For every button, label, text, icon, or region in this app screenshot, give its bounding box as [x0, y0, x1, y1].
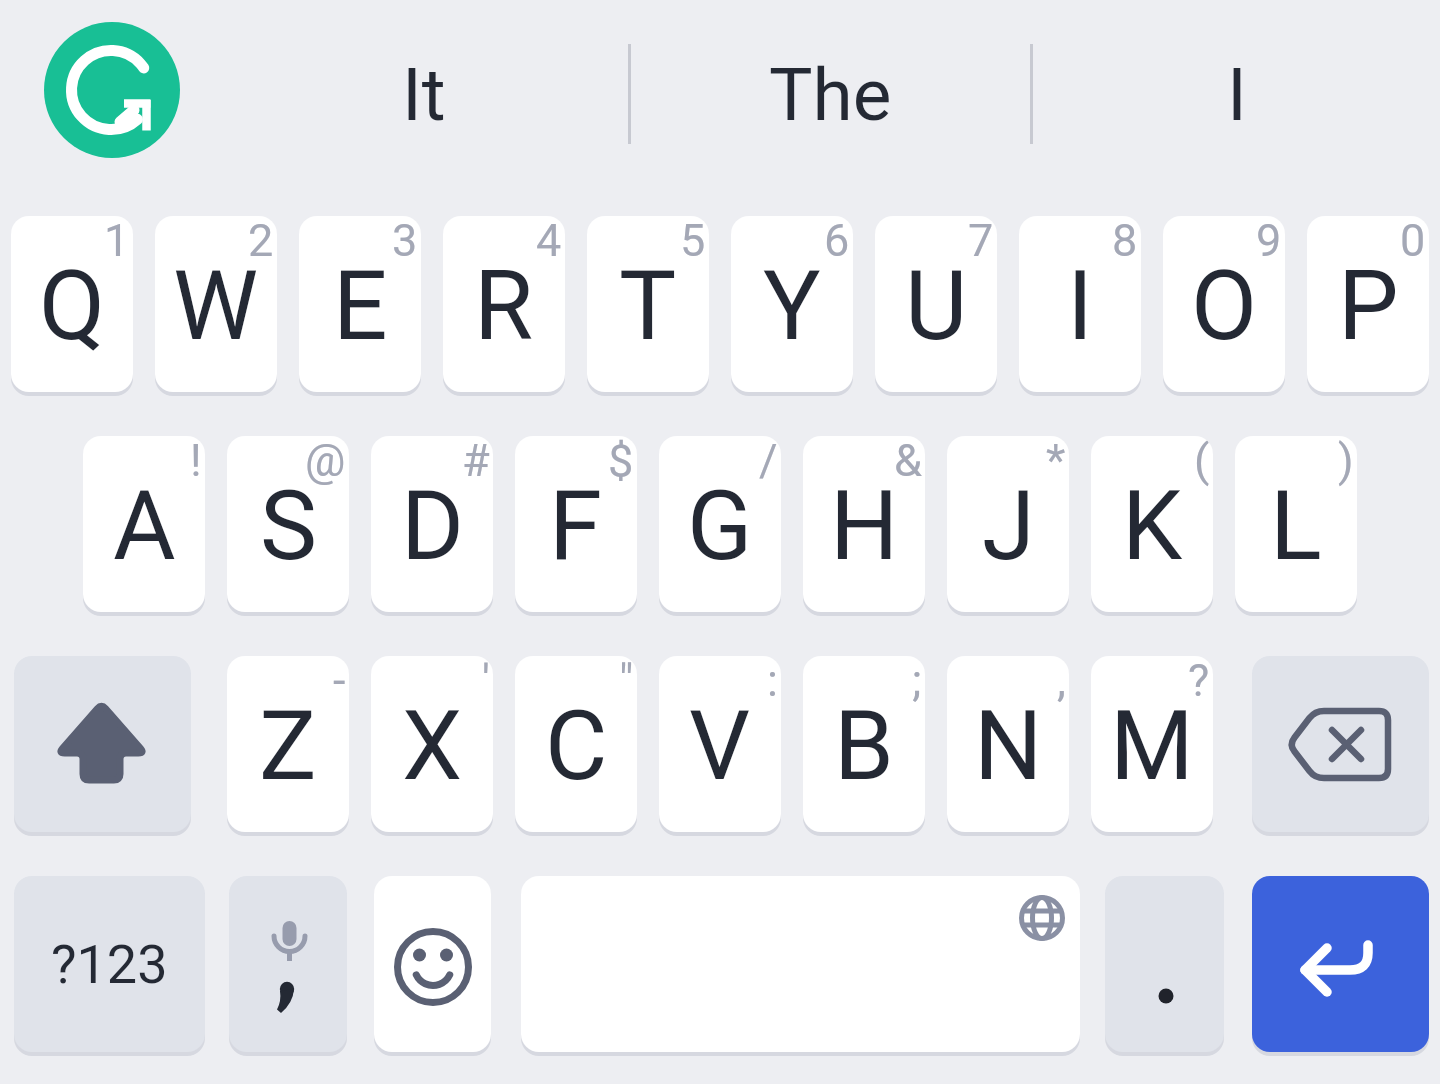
staticText: # — [462, 436, 490, 487]
button[interactable]: Y — [731, 216, 853, 392]
staticText: X — [402, 690, 463, 803]
button[interactable]: G — [659, 436, 781, 612]
button[interactable]: C — [515, 656, 637, 832]
staticText: J — [982, 470, 1035, 583]
staticText: It — [402, 52, 446, 138]
button[interactable]: E — [299, 216, 421, 392]
button[interactable]: K — [1091, 436, 1213, 612]
button[interactable]: A — [83, 436, 205, 612]
button[interactable]: N — [947, 656, 1069, 832]
button[interactable] — [229, 876, 347, 1052]
staticText: Q — [39, 250, 106, 363]
button[interactable]: M — [1091, 656, 1213, 832]
button[interactable]: T — [587, 216, 709, 392]
staticText: ; — [912, 656, 922, 707]
staticText: P — [1338, 250, 1399, 363]
staticText: @ — [305, 436, 346, 487]
button[interactable]: R — [443, 216, 565, 392]
button[interactable]: V — [659, 656, 781, 832]
button[interactable] — [44, 22, 180, 158]
staticText: G — [687, 470, 753, 583]
button[interactable]: P — [1307, 216, 1429, 392]
staticText: D — [401, 470, 464, 583]
staticText: 3 — [392, 216, 418, 267]
staticText: W — [173, 250, 259, 363]
button[interactable]: H — [803, 436, 925, 612]
staticText: , — [1057, 656, 1066, 707]
staticText: A — [113, 470, 176, 583]
staticText: Z — [259, 690, 317, 803]
staticText: S — [260, 470, 317, 583]
button[interactable] — [1105, 876, 1224, 1052]
button[interactable]: The — [680, 40, 980, 150]
staticText: 9 — [1256, 216, 1282, 267]
staticText: 2 — [248, 216, 274, 267]
staticText: : — [767, 656, 778, 707]
staticText: I — [1067, 250, 1094, 363]
staticText: * — [1046, 436, 1066, 487]
staticText: H — [830, 470, 899, 583]
button[interactable]: O — [1163, 216, 1285, 392]
staticText: N — [974, 690, 1043, 803]
button[interactable]: B — [803, 656, 925, 832]
staticText: ' — [482, 656, 490, 707]
staticText: V — [689, 690, 751, 803]
staticText: - — [333, 656, 346, 707]
button[interactable] — [521, 876, 1080, 1052]
button[interactable]: It — [274, 40, 574, 150]
staticText: 0 — [1400, 216, 1426, 267]
button[interactable]: ?123 — [14, 876, 205, 1052]
staticText: L — [1270, 470, 1322, 583]
button[interactable]: I — [1019, 216, 1141, 392]
staticText: 4 — [536, 216, 562, 267]
staticText: F — [549, 470, 603, 583]
staticText: M — [1110, 690, 1194, 803]
button[interactable]: D — [371, 436, 493, 612]
staticText: 5 — [680, 216, 706, 267]
staticText: ( — [1194, 436, 1210, 487]
button[interactable] — [1252, 656, 1429, 832]
staticText: Y — [763, 250, 821, 363]
button[interactable] — [1252, 876, 1429, 1052]
staticText: ) — [1338, 436, 1354, 487]
staticText: 8 — [1112, 216, 1138, 267]
button[interactable]: X — [371, 656, 493, 832]
staticText: The — [769, 52, 892, 138]
staticText: O — [1191, 250, 1258, 363]
staticText: ? — [1188, 656, 1210, 707]
button[interactable]: F — [515, 436, 637, 612]
staticText: C — [545, 690, 608, 803]
button[interactable]: Q — [11, 216, 133, 392]
staticText: E — [333, 250, 388, 363]
staticText: U — [905, 250, 968, 363]
button[interactable]: J — [947, 436, 1069, 612]
staticText: $ — [608, 436, 634, 487]
staticText: R — [474, 250, 534, 363]
staticText: ?123 — [51, 933, 168, 996]
button[interactable]: W — [155, 216, 277, 392]
button[interactable]: I — [1087, 40, 1387, 150]
button[interactable]: Z — [227, 656, 349, 832]
staticText: I — [1227, 52, 1247, 138]
staticText: T — [619, 250, 677, 363]
staticText: " — [619, 656, 634, 707]
staticText: ! — [190, 436, 202, 487]
staticText: K — [1122, 470, 1183, 583]
staticText: 7 — [968, 216, 994, 267]
staticText: B — [834, 690, 894, 803]
button[interactable]: L — [1235, 436, 1357, 612]
staticText: & — [894, 436, 922, 487]
button[interactable] — [14, 656, 191, 832]
button[interactable]: U — [875, 216, 997, 392]
staticText: / — [759, 436, 778, 487]
button[interactable]: S — [227, 436, 349, 612]
staticText: 1 — [104, 216, 130, 267]
button[interactable] — [374, 876, 491, 1052]
staticText: 6 — [824, 216, 850, 267]
